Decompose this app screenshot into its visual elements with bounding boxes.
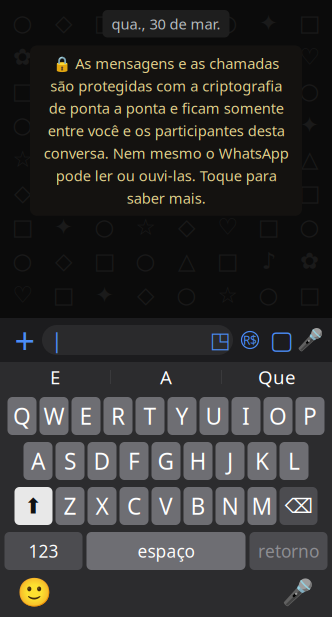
button[interactable]: G xyxy=(151,442,180,480)
staticText: ✿ xyxy=(136,180,155,206)
button[interactable]: 🔒 As mensagens e as chamadas são protegi… xyxy=(30,45,302,216)
staticText: H xyxy=(189,446,206,476)
staticText: ◳ xyxy=(210,328,230,352)
button[interactable]: Q xyxy=(7,397,36,435)
staticText: ◇ xyxy=(55,10,72,36)
button[interactable]: Y xyxy=(167,397,196,435)
staticText: W xyxy=(43,401,64,431)
staticText: 🔒 As mensagens e as chamadas são protegi… xyxy=(43,53,288,208)
button[interactable]: Anexar xyxy=(8,323,42,357)
button[interactable]: I xyxy=(231,397,260,435)
button[interactable]: R xyxy=(103,397,132,435)
button[interactable]: Pagamento xyxy=(233,323,267,357)
staticText: G xyxy=(157,446,174,476)
staticText: □ xyxy=(258,214,279,240)
button[interactable]: V xyxy=(151,487,180,525)
staticText: ○ xyxy=(217,180,237,206)
staticText: ◇ xyxy=(137,44,154,70)
staticText: Que xyxy=(258,365,296,389)
staticText: ○ xyxy=(299,78,319,104)
staticText: ✿ xyxy=(13,44,32,70)
button[interactable]: T xyxy=(135,397,164,435)
staticText: ○ xyxy=(258,282,278,308)
button[interactable]: Câmera xyxy=(267,323,297,357)
staticText: ✿ xyxy=(95,112,114,138)
button[interactable]: Emoji xyxy=(14,575,54,609)
staticText: □ xyxy=(12,214,33,240)
button[interactable]: Figurinhas xyxy=(207,327,233,353)
staticText: ◇ xyxy=(260,112,277,138)
staticText: ○ xyxy=(176,282,196,308)
staticText: R$ xyxy=(243,332,257,348)
button[interactable]: P xyxy=(295,397,324,435)
staticText: ○ xyxy=(299,214,319,240)
staticText: S xyxy=(64,446,76,476)
staticText: Q xyxy=(13,401,31,431)
staticText: ◇ xyxy=(96,146,113,172)
button[interactable]: C xyxy=(119,487,148,525)
button[interactable]: O xyxy=(263,397,292,435)
staticText: □ xyxy=(53,282,74,308)
staticText: Y xyxy=(175,401,188,431)
staticText: □ xyxy=(299,282,320,308)
staticText: ☆ xyxy=(94,44,114,70)
staticText: ○ xyxy=(12,112,32,138)
button[interactable]: A xyxy=(23,442,52,480)
button[interactable]: Ditado xyxy=(278,575,318,609)
staticText: 123 xyxy=(28,539,58,562)
button[interactable]: ⬆ xyxy=(14,487,52,525)
staticText: □ xyxy=(217,146,238,172)
staticText: □ xyxy=(217,248,238,274)
staticText: ♡ xyxy=(135,10,155,36)
button[interactable]: E xyxy=(0,364,110,390)
button[interactable]: H xyxy=(183,442,212,480)
staticText: ○ xyxy=(94,214,114,240)
staticText: □ xyxy=(299,180,320,206)
staticText: R xyxy=(111,401,125,431)
button[interactable]: E xyxy=(71,397,100,435)
staticText: ○ xyxy=(94,78,114,104)
staticText: □ xyxy=(94,10,115,36)
button[interactable]: A xyxy=(111,364,221,390)
button[interactable]: M xyxy=(247,487,276,525)
staticText: X xyxy=(95,491,108,521)
button[interactable]: espaço xyxy=(86,532,245,570)
button[interactable]: D xyxy=(87,442,116,480)
button[interactable]: Z xyxy=(55,487,84,525)
staticText: △ xyxy=(178,248,195,274)
button[interactable]: U xyxy=(199,397,228,435)
staticText: O xyxy=(269,401,287,431)
staticText: E xyxy=(79,401,92,431)
button[interactable]: retorno xyxy=(249,532,327,570)
staticText: P xyxy=(303,401,317,431)
button[interactable]: N xyxy=(215,487,244,525)
staticText: ♪ xyxy=(179,44,193,70)
button[interactable]: J xyxy=(215,442,244,480)
staticText: □ xyxy=(258,78,279,104)
button[interactable]: K xyxy=(247,442,276,480)
button[interactable]: ⌫ xyxy=(279,487,317,525)
staticText: □ xyxy=(135,112,156,138)
staticText: ○ xyxy=(135,248,155,274)
staticText: □ xyxy=(94,248,115,274)
staticText: ○ xyxy=(53,44,73,70)
button[interactable]: Gravar áudio xyxy=(297,323,324,357)
staticText: I xyxy=(242,401,250,431)
staticText: ▢ xyxy=(270,326,294,354)
button[interactable]: 123 xyxy=(4,532,82,570)
staticText: ♡ xyxy=(299,44,319,70)
button[interactable]: Que xyxy=(222,364,332,390)
button[interactable]: F xyxy=(119,442,148,480)
staticText: | xyxy=(51,326,63,354)
staticText: B xyxy=(190,491,205,521)
button[interactable]: X xyxy=(87,487,116,525)
button[interactable]: S xyxy=(55,442,84,480)
button[interactable]: B xyxy=(183,487,212,525)
button[interactable]: L xyxy=(279,442,308,480)
button[interactable]: W xyxy=(39,397,68,435)
staticText: M xyxy=(251,491,272,521)
staticText: F xyxy=(128,446,140,476)
staticText: □ xyxy=(217,44,238,70)
